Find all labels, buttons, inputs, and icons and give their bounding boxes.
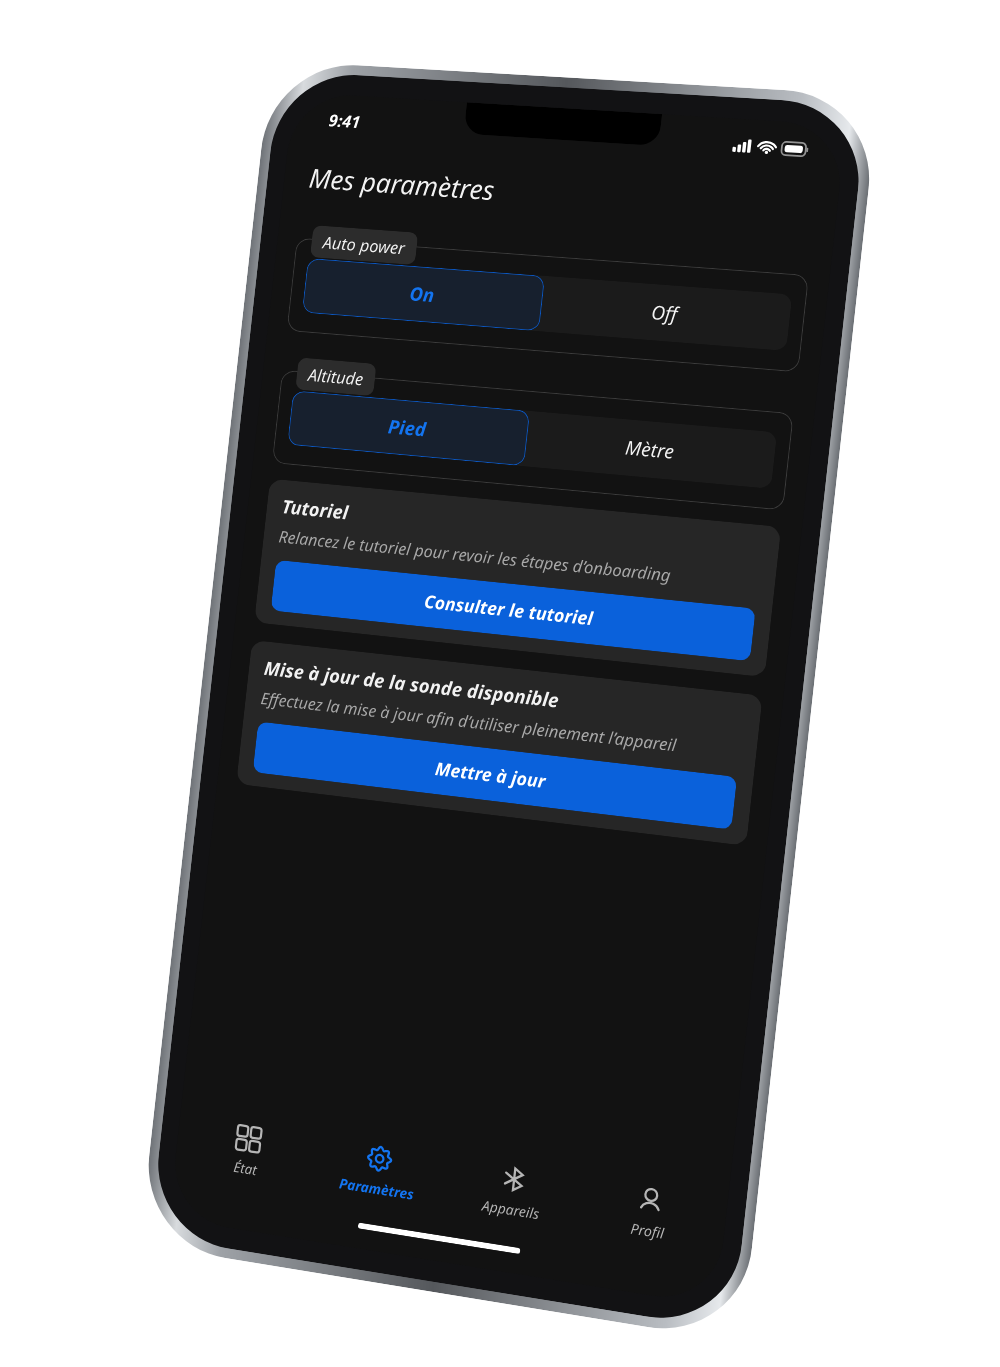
staticText: Appareils — [481, 1195, 541, 1223]
button[interactable]: Consulter le tutoriel — [271, 560, 756, 661]
staticText: Mettre à jour — [434, 756, 547, 794]
staticText: Auto power — [322, 231, 406, 259]
staticText: Paramètres — [338, 1173, 416, 1204]
staticText: Altitude — [307, 363, 365, 390]
staticText: Profil — [630, 1218, 665, 1243]
staticText: Off — [650, 299, 679, 327]
button[interactable]: On — [302, 258, 545, 331]
staticText: Effectuez la mise à jour afin d’utiliser… — [260, 686, 678, 755]
button[interactable]: Mettre à jour — [253, 721, 737, 830]
staticText: Mes paramètres — [307, 159, 496, 208]
button[interactable]: Pied — [287, 390, 530, 466]
staticText: Pied — [387, 413, 428, 442]
other: Paramètres — [365, 1143, 394, 1174]
staticText: Tutoriel — [281, 494, 350, 525]
staticText: Consulter le tutoriel — [423, 589, 595, 631]
button[interactable]: Appareils — [439, 1144, 585, 1257]
button[interactable]: Mètre — [524, 411, 777, 489]
button[interactable]: Paramètres — [306, 1124, 449, 1235]
staticText: Mètre — [624, 434, 676, 465]
other: Profil — [636, 1184, 666, 1216]
staticText: État — [233, 1157, 258, 1179]
other: Appareils — [499, 1164, 528, 1195]
staticText: Mise à jour de la sonde disponible — [263, 655, 560, 714]
staticText: 9:41 — [328, 109, 361, 133]
button[interactable]: État — [177, 1104, 316, 1214]
staticText: Relancez le tutoriel pour revoir les éta… — [278, 525, 672, 585]
staticText: On — [408, 281, 436, 308]
other: État — [234, 1124, 263, 1154]
button[interactable]: Off — [539, 276, 792, 351]
button[interactable]: Profil — [574, 1164, 723, 1279]
